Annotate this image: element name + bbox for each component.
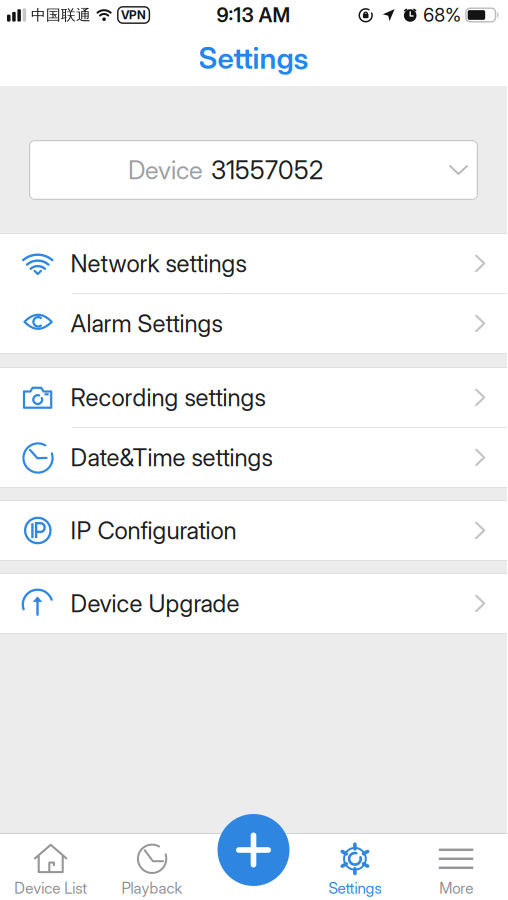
button[interactable]: Playback — [101, 843, 203, 897]
button[interactable]: Add Device — [217, 814, 289, 886]
staticText: 中国联通 — [31, 6, 91, 24]
button[interactable]: IP Configuration — [0, 501, 507, 560]
staticText: IP Configuration — [70, 516, 236, 545]
staticText: 31557052 — [211, 155, 323, 185]
button[interactable]: More — [406, 843, 507, 897]
staticText: Settings — [328, 879, 381, 897]
staticText: Settings — [198, 40, 308, 76]
button[interactable]: Device Upgrade — [0, 574, 507, 633]
button[interactable]: Device — [0, 140, 507, 200]
button[interactable]: Network settings — [0, 234, 507, 293]
staticText: Device — [128, 155, 203, 185]
staticText: Recording settings — [70, 383, 265, 412]
staticText: VPN — [121, 8, 146, 22]
button[interactable]: Settings — [304, 843, 406, 897]
staticText: Device Upgrade — [70, 589, 239, 618]
staticText: 9:13 AM — [216, 3, 290, 27]
staticText: Date&Time settings — [70, 443, 272, 472]
button[interactable]: Date&Time settings — [0, 428, 507, 487]
staticText: Alarm Settings — [70, 309, 222, 338]
button[interactable]: Device List — [0, 843, 101, 897]
staticText: Network settings — [70, 249, 246, 278]
button[interactable]: Alarm Settings — [0, 294, 507, 353]
staticText: Playback — [122, 879, 183, 897]
staticText: 68% — [423, 4, 461, 26]
button[interactable]: Recording settings — [0, 368, 507, 427]
staticText: Device List — [14, 879, 87, 897]
staticText: More — [439, 879, 473, 897]
